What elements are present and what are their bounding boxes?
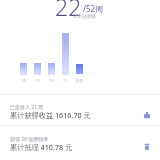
staticText: 20 bbox=[49, 78, 54, 84]
staticText: 本周 bbox=[75, 78, 84, 83]
other: Earnings detail bbox=[143, 111, 151, 119]
staticText: 累计获得收益 1616.70 元 bbox=[10, 110, 91, 120]
staticText: /52周 bbox=[83, 3, 104, 14]
button[interactable]: 已坚持入 21 周 bbox=[0, 96, 160, 126]
staticText: 已坚持入 21 周 bbox=[10, 104, 44, 111]
other: Coupon detail bbox=[143, 143, 151, 151]
staticText: 19 bbox=[35, 78, 40, 84]
staticText: 累计抵现 410.78 元 bbox=[10, 142, 73, 152]
staticText: 18 bbox=[21, 78, 26, 84]
staticText: 21 bbox=[63, 78, 68, 84]
staticText: 已坚持攒钱 bbox=[73, 14, 96, 20]
staticText: 22 bbox=[55, 0, 82, 22]
staticText: 获得 26 张攒钱券 bbox=[10, 136, 49, 143]
button[interactable]: 获得 26 张攒钱券 bbox=[0, 128, 160, 158]
